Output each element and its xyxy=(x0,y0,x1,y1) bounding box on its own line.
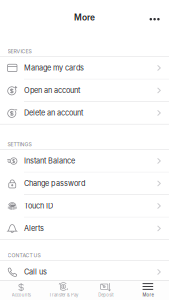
button[interactable]: Touch ID xyxy=(0,195,169,217)
button[interactable]: Call us xyxy=(0,261,169,283)
staticText: Transfer & Pay xyxy=(49,292,78,298)
staticText: Manage my cards xyxy=(24,63,84,72)
button[interactable]: Manage my cards xyxy=(0,57,169,79)
button[interactable]: Deposit xyxy=(84,280,127,298)
button[interactable]: Change password xyxy=(0,172,169,194)
button[interactable]: Delete an account xyxy=(0,102,169,124)
staticText: Change password xyxy=(24,179,85,188)
staticText: Deposit xyxy=(98,292,113,298)
staticText: Delete an account xyxy=(24,108,83,117)
button[interactable]: Alerts xyxy=(0,217,169,239)
button[interactable]: Open an account xyxy=(0,79,169,101)
staticText: SETTINGS xyxy=(7,141,31,147)
staticText: CONTACT US xyxy=(7,252,40,258)
staticText: More xyxy=(142,292,153,298)
button[interactable]: More xyxy=(127,280,169,298)
staticText: Touch ID xyxy=(24,201,53,210)
button[interactable]: Instant Balance xyxy=(0,150,169,172)
staticText: Instant Balance xyxy=(24,156,75,165)
staticText: Call us xyxy=(24,267,47,276)
staticText: More xyxy=(74,12,95,23)
button[interactable]: More options xyxy=(142,6,169,29)
staticText: Open an account xyxy=(24,86,80,95)
staticText: SERVICES xyxy=(7,48,31,54)
button[interactable]: Accounts xyxy=(0,280,42,298)
button[interactable]: Transfer & Pay xyxy=(42,280,84,298)
staticText: Accounts xyxy=(12,292,31,298)
staticText: Alerts xyxy=(24,224,44,233)
